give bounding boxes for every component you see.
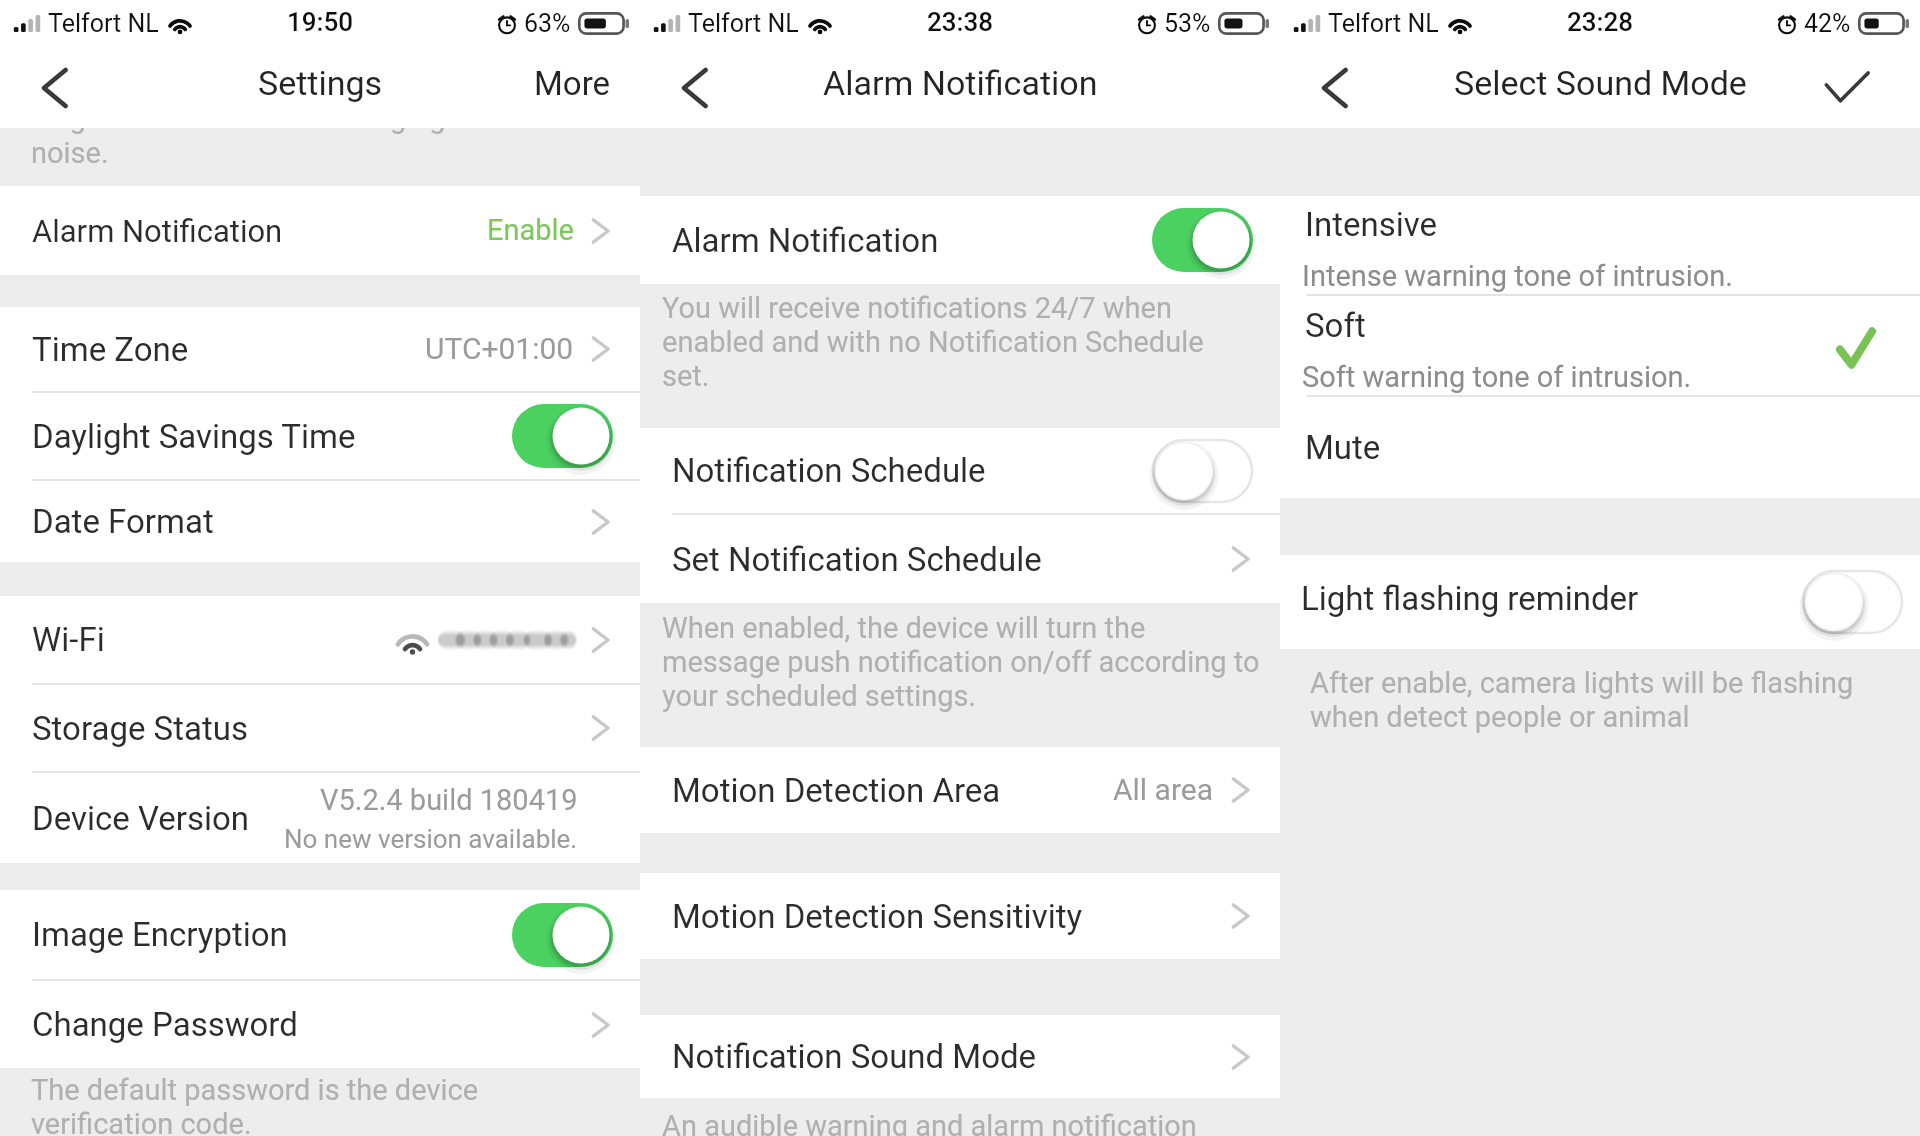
staticText: 53% <box>1164 9 1211 38</box>
staticText: Alarm Notification <box>32 213 283 249</box>
button[interactable]: Confirm <box>1811 53 1883 123</box>
button[interactable]: Daylight Savings Time <box>0 393 640 479</box>
staticText: When enabled, the device will turn the m… <box>662 611 1266 713</box>
button[interactable]: Date Format <box>0 481 640 562</box>
button[interactable]: Change Password <box>0 981 640 1068</box>
button[interactable]: More <box>520 55 625 122</box>
button[interactable]: Notification Sound Mode <box>640 1015 1280 1098</box>
staticText: The default password is the device verif… <box>31 1073 479 1136</box>
staticText: Settings <box>258 63 383 103</box>
button[interactable]: Notification Schedule <box>640 428 1280 513</box>
staticText: Device Version <box>32 799 249 838</box>
staticText: Time Zone <box>32 330 189 369</box>
staticText: Wi-Fi <box>32 620 105 659</box>
staticText: V5.2.4 build 180419 <box>320 783 578 817</box>
button[interactable]: Time Zone <box>0 307 640 391</box>
staticText: Notification Schedule <box>672 451 986 490</box>
button[interactable]: Motion Detection Sensitivity <box>640 873 1280 959</box>
staticText: Light flashing reminder <box>1301 579 1639 618</box>
button[interactable]: Wi-Fi <box>0 596 640 683</box>
button[interactable]: Mute <box>1280 397 1920 498</box>
staticText: Motion Detection Sensitivity <box>672 897 1083 936</box>
button[interactable]: Set Notification Schedule <box>640 515 1280 603</box>
staticText: 19:50 <box>287 7 354 37</box>
staticText: Alarm Notification <box>823 63 1098 103</box>
button[interactable]: Light flashing reminder <box>1280 555 1920 649</box>
staticText: Date Format <box>32 502 214 541</box>
staticText: Daylight Savings Time <box>32 417 356 456</box>
staticText: noise. <box>31 136 109 170</box>
staticText: After enable, camera lights will be flas… <box>1310 666 1898 734</box>
staticText: Intense warning tone of intrusion. <box>1302 259 1734 293</box>
button[interactable]: Image Encryption <box>0 890 640 979</box>
staticText: Telfort NL <box>48 9 159 38</box>
staticText: 23:28 <box>1567 7 1634 37</box>
button[interactable]: Device Version <box>0 773 640 863</box>
staticText: Soft warning tone of intrusion. <box>1302 360 1692 394</box>
staticText: Mute <box>1305 428 1381 467</box>
staticText: 42% <box>1804 9 1851 38</box>
staticText: UTC+01:00 <box>425 331 574 366</box>
staticText: No new version available. <box>284 824 578 854</box>
staticText: Storage Status <box>32 709 248 748</box>
staticText: An audible warning and alarm notificatio… <box>662 1109 1197 1136</box>
staticText: Telfort NL <box>1328 9 1439 38</box>
staticText: You will receive notifications 24/7 when… <box>662 291 1228 393</box>
button[interactable]: Soft <box>1280 296 1920 395</box>
staticText: Alarm Notification <box>672 221 939 260</box>
button[interactable]: Intensive <box>1280 196 1920 294</box>
staticText: More <box>534 64 611 103</box>
staticText: Select Sound Mode <box>1454 63 1747 103</box>
button[interactable]: Alarm Notification <box>0 186 640 275</box>
staticText: Soft <box>1305 306 1366 345</box>
staticText: All area <box>1113 772 1214 807</box>
staticText: neighbors with the alarm ringing <box>31 128 446 135</box>
button[interactable]: Storage Status <box>0 685 640 771</box>
staticText: Intensive <box>1305 205 1438 244</box>
staticText: Motion Detection Area <box>672 771 1001 810</box>
button[interactable]: Alarm Notification <box>640 196 1280 284</box>
staticText: Set Notification Schedule <box>672 540 1042 579</box>
staticText: Image Encryption <box>32 915 288 954</box>
staticText: 23:38 <box>927 7 994 37</box>
button[interactable]: Motion Detection Area <box>640 747 1280 833</box>
staticText: Telfort NL <box>688 9 799 38</box>
staticText: 63% <box>524 9 571 38</box>
button[interactable]: Back <box>1300 53 1368 123</box>
staticText: Notification Sound Mode <box>672 1037 1037 1076</box>
button[interactable]: Back <box>20 53 88 123</box>
button[interactable]: Back <box>660 53 728 123</box>
staticText: Change Password <box>32 1005 298 1044</box>
staticText: Enable <box>487 213 574 247</box>
